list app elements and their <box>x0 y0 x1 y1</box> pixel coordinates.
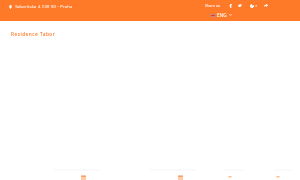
staticText: Taboritska 4 130 00 - Praha <box>15 4 73 9</box>
staticText: Share on <box>205 3 221 8</box>
staticText: ENG <box>217 12 227 18</box>
button[interactable]: Share <box>264 4 268 7</box>
button[interactable]: Adults <box>228 176 232 178</box>
button[interactable]: Taboritska 4 130 00 - Praha <box>9 4 73 9</box>
button[interactable]: Share on Google Plus <box>250 4 257 8</box>
button[interactable]: Check out date <box>178 175 183 180</box>
button[interactable]: Children <box>276 176 280 178</box>
button[interactable]: Share on Facebook <box>229 4 232 8</box>
button[interactable]: ENG <box>211 12 232 18</box>
button[interactable]: Residence Tabor <box>11 31 56 37</box>
button[interactable]: Check in date <box>81 175 86 180</box>
button[interactable]: Share on Twitter <box>238 4 242 7</box>
